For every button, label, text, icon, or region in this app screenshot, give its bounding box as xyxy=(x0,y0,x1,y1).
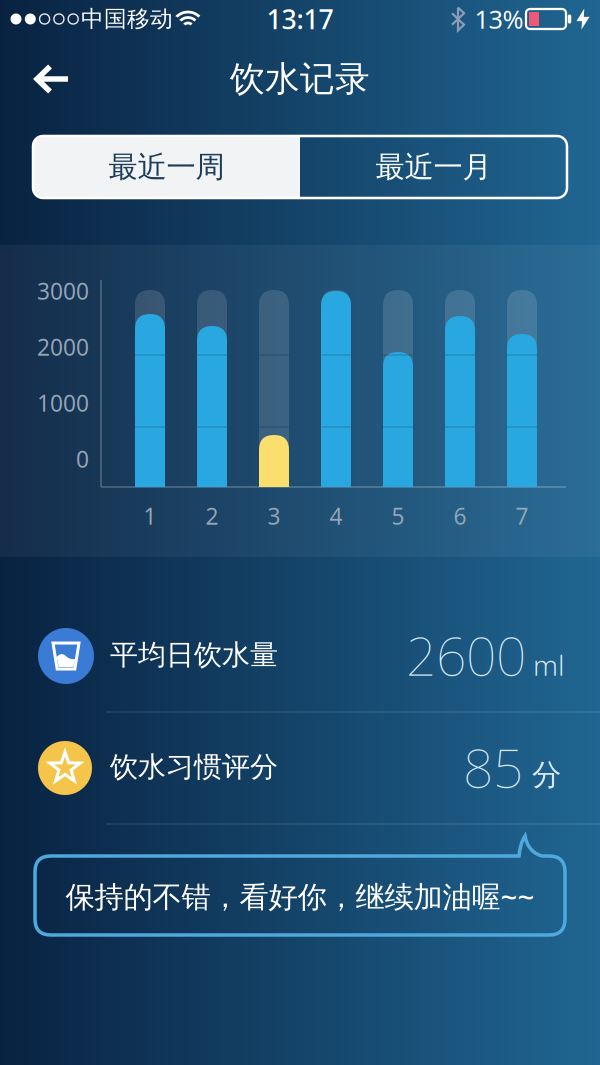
staticText: 0 xyxy=(76,444,89,474)
staticText: 2000 xyxy=(37,332,89,362)
staticText: 5 xyxy=(391,501,404,531)
staticText: 分 xyxy=(523,757,561,793)
staticText: 3000 xyxy=(37,276,89,306)
staticText: 2600 xyxy=(406,620,526,690)
staticText: 平均日饮水量 xyxy=(110,638,278,672)
staticText: 保持的不错，看好你，继续加油喔~~ xyxy=(65,876,534,915)
staticText: 6 xyxy=(453,501,466,531)
button[interactable]: 最近一周 xyxy=(33,136,300,198)
staticText: 13% xyxy=(474,2,523,36)
button[interactable]: 返回 xyxy=(25,53,80,104)
staticText: 饮水记录 xyxy=(230,58,370,100)
staticText: 3 xyxy=(267,501,280,531)
staticText: 中国移动 xyxy=(81,5,173,33)
staticText: 1 xyxy=(143,501,156,531)
staticText: 1000 xyxy=(37,388,89,418)
staticText: 85 xyxy=(463,732,523,802)
staticText: 最近一月 xyxy=(375,149,491,185)
staticText: 4 xyxy=(329,501,342,531)
button[interactable]: 最近一月 xyxy=(300,136,567,198)
staticText: ml xyxy=(526,646,565,683)
staticText: 最近一周 xyxy=(108,149,224,185)
staticText: 7 xyxy=(515,501,528,531)
staticText: 2 xyxy=(205,501,218,531)
staticText: 13:17 xyxy=(266,1,333,37)
staticText: 饮水习惯评分 xyxy=(110,750,278,784)
